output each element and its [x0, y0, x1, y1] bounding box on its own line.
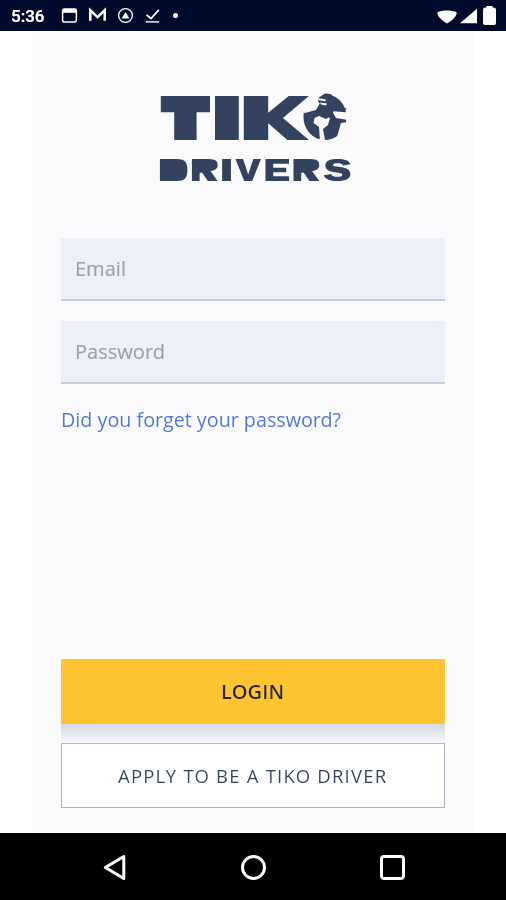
button[interactable]: LOGIN — [61, 659, 445, 724]
staticText: APPLY TO BE A TIKO DRIVER — [118, 763, 388, 788]
button[interactable]: APPLY TO BE A TIKO DRIVER — [61, 743, 445, 808]
staticText: Password — [75, 338, 165, 365]
button[interactable]: Recent apps — [368, 843, 416, 891]
button[interactable]: Email — [61, 238, 445, 301]
staticText: Email — [75, 255, 126, 282]
button[interactable]: Did you forget your password? — [61, 406, 342, 433]
staticText: LOGIN — [221, 678, 285, 705]
staticText: Did you forget your password? — [61, 406, 342, 433]
button[interactable]: Back — [91, 843, 139, 891]
staticText: 5:36 — [11, 6, 45, 26]
button[interactable]: Home — [229, 843, 277, 891]
button[interactable]: Password — [61, 321, 445, 384]
